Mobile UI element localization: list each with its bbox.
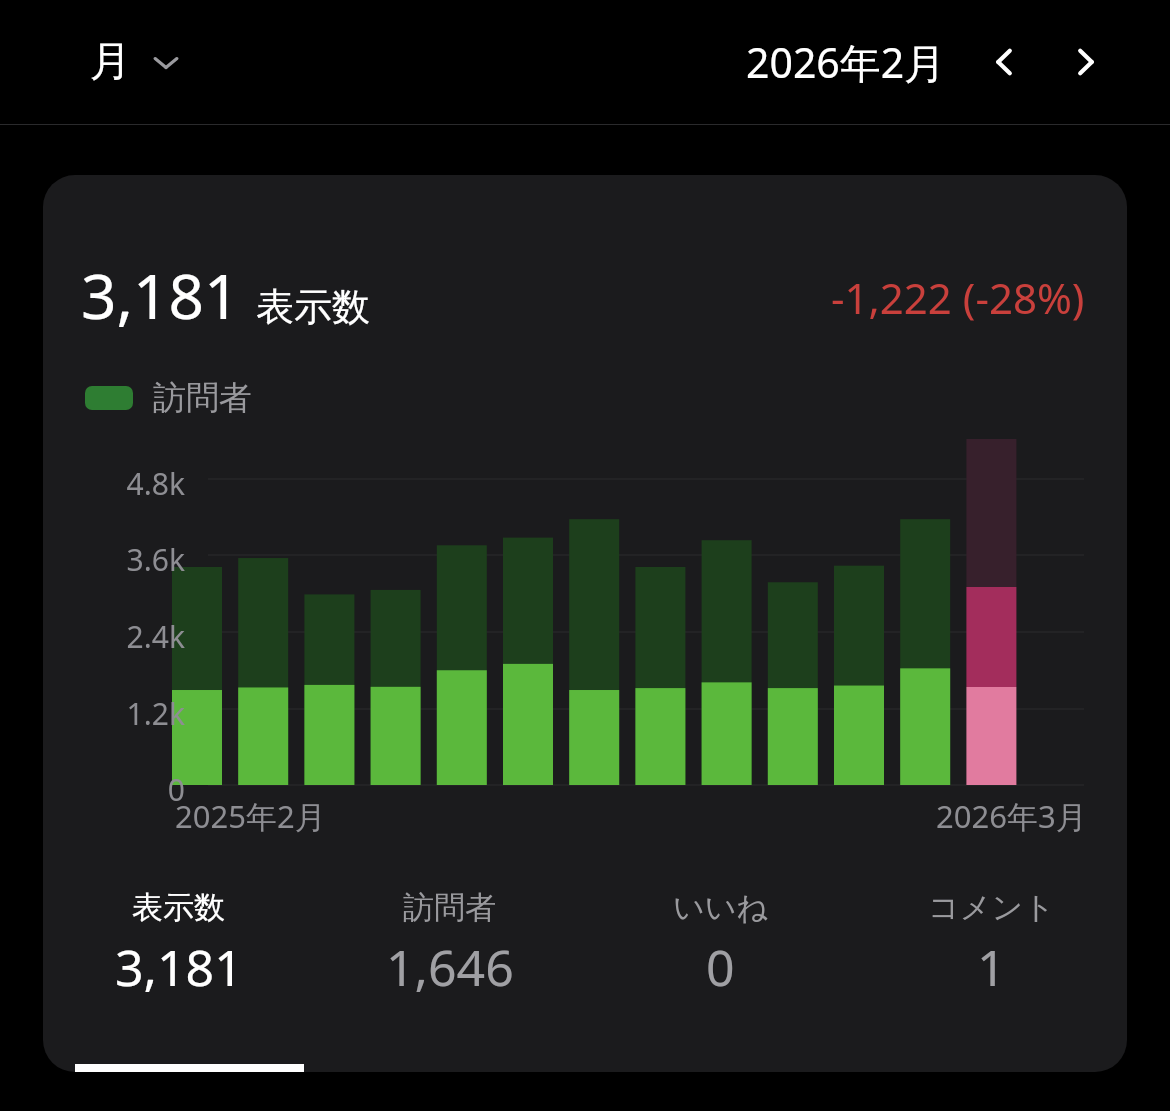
button[interactable]: Previous period (978, 35, 1032, 89)
staticText: 1.2k (85, 693, 185, 734)
button[interactable]: コメント (856, 866, 1127, 1072)
button[interactable]: 訪問者 (85, 377, 252, 419)
staticText: 2026年3月 (936, 795, 1087, 837)
staticText: いいね (673, 888, 769, 927)
button[interactable]: 表示数 (43, 866, 314, 1072)
staticText: 訪問者 (403, 888, 496, 927)
staticText: 0 (85, 769, 185, 810)
button[interactable]: 訪問者 (314, 866, 585, 1072)
button[interactable]: いいね (585, 866, 856, 1072)
staticText: 訪問者 (153, 377, 252, 419)
button[interactable]: 3,181 (43, 175, 1127, 1072)
staticText: 月 (90, 36, 131, 88)
staticText: 表示数 (256, 283, 370, 331)
button[interactable]: 月 (80, 28, 193, 96)
staticText: 3,181 (81, 253, 240, 337)
staticText: 0 (706, 933, 735, 1001)
staticText: 1,646 (386, 933, 514, 1001)
staticText: コメント (928, 888, 1055, 927)
staticText: 表示数 (132, 888, 225, 927)
staticText: 2025年2月 (175, 795, 326, 837)
staticText: 1 (977, 933, 1006, 1001)
staticText: 2026年2月 (746, 34, 946, 90)
staticText: 2.4k (85, 616, 185, 657)
staticText: -1,222 (-28%) (831, 269, 1085, 326)
staticText: 3.6k (85, 539, 185, 580)
staticText: 3,181 (115, 933, 243, 1001)
staticText: 4.8k (85, 463, 185, 504)
button[interactable]: Next period (1058, 35, 1112, 89)
